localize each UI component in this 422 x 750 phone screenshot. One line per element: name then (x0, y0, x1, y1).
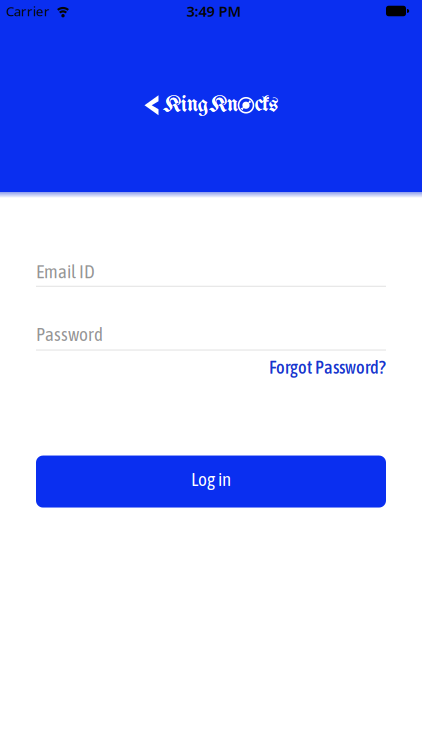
staticText: KingKn (163, 93, 238, 117)
staticText: KingKn (162, 93, 237, 117)
staticText: 3:49 PM (186, 1, 241, 21)
staticText: Email ID (36, 260, 95, 282)
button[interactable]: Email ID (36, 260, 386, 287)
staticText: cks (255, 93, 278, 117)
button[interactable]: Password (36, 323, 386, 351)
staticText: Log in (191, 468, 231, 490)
staticText: Forgot Password? (269, 356, 386, 377)
button[interactable]: Log in (36, 456, 386, 508)
button[interactable]: Forgot Password? (269, 356, 386, 377)
staticText: cks (254, 93, 277, 117)
staticText: Carrier (6, 2, 50, 20)
staticText: Password (36, 323, 103, 345)
